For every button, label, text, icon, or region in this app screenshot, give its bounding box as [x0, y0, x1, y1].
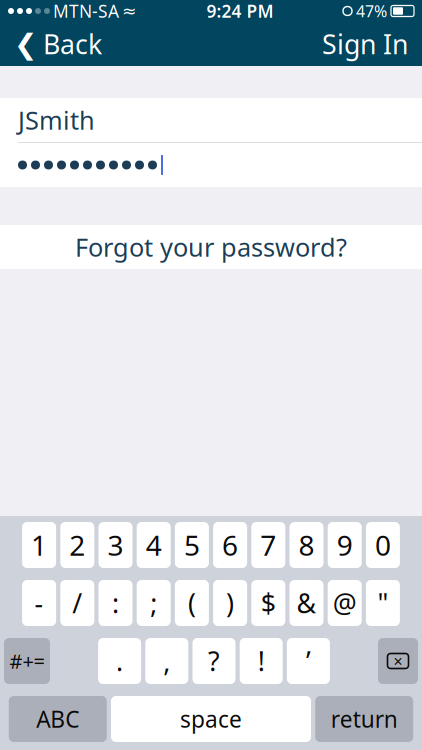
- staticText: ❮: [14, 28, 37, 60]
- staticText: #+=: [9, 648, 44, 674]
- staticText: ,: [163, 643, 170, 679]
- staticText: 4: [146, 526, 162, 564]
- button[interactable]: ): [213, 580, 247, 626]
- button[interactable]: 7: [251, 522, 285, 568]
- staticText: return: [331, 704, 398, 734]
- button[interactable]: :: [98, 580, 132, 626]
- staticText: ): [226, 585, 234, 621]
- button[interactable]: ABC: [9, 696, 107, 742]
- staticText: ≈: [122, 1, 137, 21]
- staticText: 6: [222, 526, 238, 564]
- staticText: &: [296, 585, 316, 621]
- button[interactable]: @: [328, 580, 362, 626]
- button[interactable]: $: [251, 580, 285, 626]
- staticText: 3: [107, 526, 123, 564]
- staticText: 7: [260, 526, 276, 564]
- staticText: Back: [43, 26, 102, 62]
- button[interactable]: ": [366, 580, 400, 626]
- staticText: 2: [69, 526, 85, 564]
- staticText: !: [258, 643, 265, 679]
- button[interactable]: ;: [137, 580, 171, 626]
- button[interactable]: 9: [328, 522, 362, 568]
- button[interactable]: 0: [366, 522, 400, 568]
- button[interactable]: space: [111, 696, 311, 742]
- button[interactable]: ❮: [0, 22, 116, 66]
- staticText: (: [188, 585, 196, 621]
- staticText: space: [180, 704, 242, 734]
- staticText: ’: [306, 643, 311, 679]
- button[interactable]: return: [315, 696, 413, 742]
- staticText: ;: [150, 585, 157, 621]
- staticText: :: [112, 585, 119, 621]
- staticText: 8: [298, 526, 314, 564]
- staticText: JSmith: [18, 103, 95, 137]
- staticText: 47%: [356, 0, 387, 22]
- staticText: Sign In: [322, 26, 408, 62]
- button[interactable]: -: [22, 580, 56, 626]
- staticText: /: [72, 585, 82, 621]
- staticText: ?: [208, 643, 220, 679]
- button[interactable]: (: [175, 580, 209, 626]
- button[interactable]: &: [289, 580, 323, 626]
- button[interactable]: ,: [145, 638, 188, 684]
- button[interactable]: Delete: [378, 638, 418, 684]
- staticText: 0: [375, 526, 391, 564]
- button[interactable]: #+=: [4, 638, 50, 684]
- button[interactable]: 4: [137, 522, 171, 568]
- staticText: ×: [393, 650, 402, 672]
- staticText: MTN-SA: [53, 0, 119, 22]
- button[interactable]: 8: [289, 522, 323, 568]
- button[interactable]: 1: [22, 522, 56, 568]
- staticText: 9:24 PM: [206, 0, 273, 22]
- staticText: @: [333, 585, 357, 621]
- button[interactable]: 6: [213, 522, 247, 568]
- staticText: 5: [184, 526, 200, 564]
- staticText: Forgot your password?: [75, 230, 347, 264]
- staticText: 9: [337, 526, 353, 564]
- button[interactable]: Forgot your password?: [0, 225, 422, 269]
- staticText: .: [116, 643, 123, 679]
- staticText: $: [261, 585, 276, 621]
- button[interactable]: 5: [175, 522, 209, 568]
- staticText: ": [377, 585, 388, 621]
- button[interactable]: ’: [287, 638, 330, 684]
- button[interactable]: 3: [98, 522, 132, 568]
- button[interactable]: !: [240, 638, 283, 684]
- staticText: ABC: [36, 704, 79, 734]
- button[interactable]: Sign In: [308, 22, 422, 66]
- button[interactable]: .: [98, 638, 141, 684]
- staticText: -: [35, 585, 44, 621]
- staticText: 1: [31, 526, 47, 564]
- button[interactable]: ?: [192, 638, 235, 684]
- button[interactable]: 2: [60, 522, 94, 568]
- button[interactable]: /: [60, 580, 94, 626]
